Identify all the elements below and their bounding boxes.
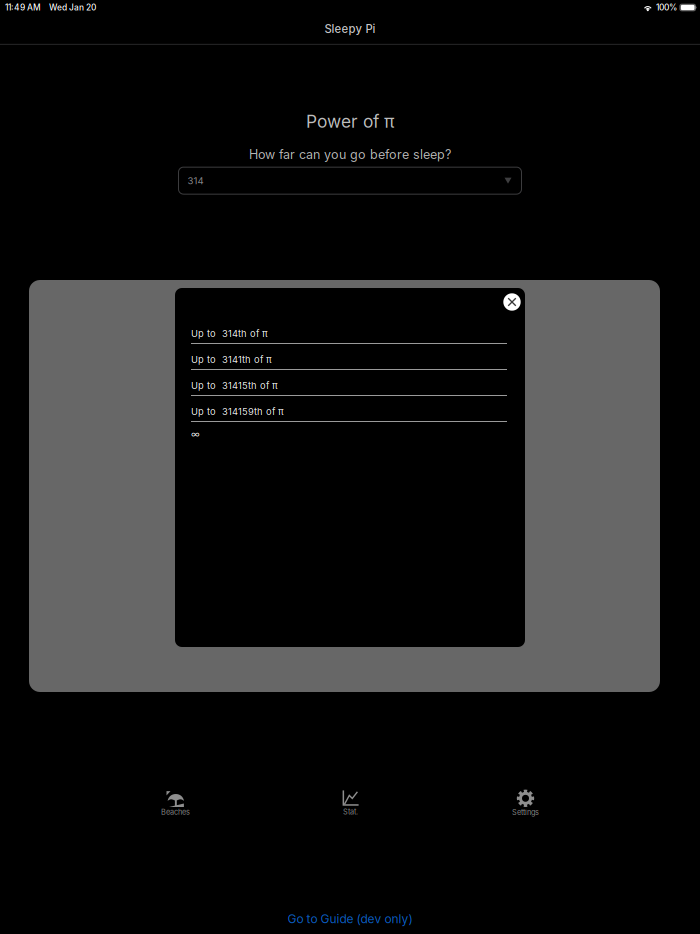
staticText: Up to xyxy=(191,328,216,339)
staticText: 314159th of π xyxy=(222,406,284,417)
staticText: Beaches xyxy=(161,808,190,817)
button[interactable]: Go to Guide (dev only) xyxy=(0,910,700,928)
staticText: Up to xyxy=(191,406,216,417)
button[interactable]: Beaches xyxy=(88,782,263,816)
button[interactable]: Close xyxy=(502,292,522,312)
staticText: Wed Jan 20 xyxy=(49,2,96,13)
button[interactable]: Settings xyxy=(438,782,613,816)
button[interactable]: Stat. xyxy=(263,782,438,816)
button[interactable]: Up to xyxy=(191,402,507,428)
staticText: Power of π xyxy=(306,111,394,132)
staticText: 314th of π xyxy=(222,328,268,339)
staticText: Up to xyxy=(191,380,216,391)
staticText: 314 xyxy=(187,175,203,186)
staticText: 31415th of π xyxy=(222,380,278,391)
staticText: Stat. xyxy=(343,807,358,816)
staticText: Go to Guide (dev only) xyxy=(287,912,412,926)
staticText: Sleepy Pi xyxy=(324,22,375,36)
button[interactable]: Up to xyxy=(191,324,507,350)
staticText: Up to xyxy=(191,354,216,365)
staticText: Settings xyxy=(512,808,539,817)
button[interactable]: 314 xyxy=(178,167,521,194)
staticText: How far can you go before sleep? xyxy=(249,147,451,162)
staticText: ∞ xyxy=(191,428,200,440)
staticText: 11:49 AM xyxy=(5,2,41,13)
staticText: 100% xyxy=(656,2,677,13)
button[interactable]: Up to xyxy=(191,350,507,376)
staticText: 3141th of π xyxy=(222,354,272,365)
button[interactable]: Up to xyxy=(191,376,507,402)
